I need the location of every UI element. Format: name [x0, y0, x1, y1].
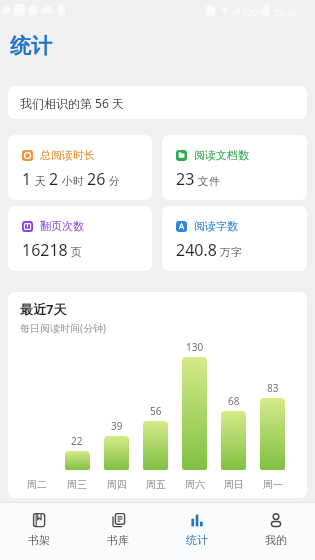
staticText: 书架: [28, 533, 50, 547]
staticText: 周四: [107, 478, 127, 491]
staticText: 周日: [224, 478, 244, 491]
staticText: 240.8: [176, 239, 217, 261]
staticText: 万字: [217, 244, 242, 259]
button[interactable]: 翻页次数: [8, 206, 152, 271]
staticText: 130: [186, 340, 204, 354]
staticText: 周二: [27, 478, 47, 491]
staticText: 100%: [242, 6, 265, 18]
staticText: 小时: [59, 173, 87, 188]
staticText: 周一: [263, 478, 283, 491]
button[interactable]: 阅读字数: [162, 206, 307, 271]
button[interactable]: 书架: [0, 503, 78, 560]
button[interactable]: 阅读文档数: [162, 135, 307, 200]
staticText: 22: [71, 434, 83, 448]
staticText: 我们相识的第 56 天: [20, 95, 124, 111]
staticText: 翻页次数: [40, 219, 84, 233]
staticText: 68: [228, 394, 240, 408]
staticText: 16218: [22, 239, 68, 261]
button[interactable]: 统计: [157, 503, 236, 560]
button[interactable]: 我的: [236, 503, 315, 560]
staticText: 书库: [107, 533, 129, 547]
staticText: 文件: [195, 173, 220, 188]
staticText: 页: [68, 244, 82, 259]
button[interactable]: 总阅读时长: [8, 135, 152, 200]
staticText: 周三: [67, 478, 87, 491]
staticText: 分: [106, 173, 120, 188]
staticText: 我的: [265, 533, 287, 547]
staticText: 2: [49, 168, 59, 190]
staticText: 统计: [186, 533, 208, 547]
staticText: 83: [267, 381, 279, 395]
staticText: 23: [176, 168, 195, 190]
button[interactable]: 我们相识的第 56 天: [8, 86, 307, 119]
staticText: 39: [111, 419, 123, 433]
staticText: 最近7天: [20, 300, 67, 318]
staticText: 阅读字数: [194, 219, 238, 233]
staticText: 周六: [185, 478, 205, 491]
staticText: 统计: [10, 33, 52, 59]
staticText: 56: [150, 404, 162, 418]
staticText: 周五: [146, 478, 166, 491]
staticText: 26: [87, 168, 106, 190]
staticText: 每日阅读时间(分钟): [20, 321, 106, 335]
staticText: 阅读文档数: [194, 148, 249, 162]
staticText: 1: [22, 168, 32, 190]
button[interactable]: 书库: [78, 503, 157, 560]
staticText: 22:42: [274, 6, 298, 18]
staticText: 天: [32, 173, 49, 188]
staticText: 总阅读时长: [40, 148, 95, 162]
